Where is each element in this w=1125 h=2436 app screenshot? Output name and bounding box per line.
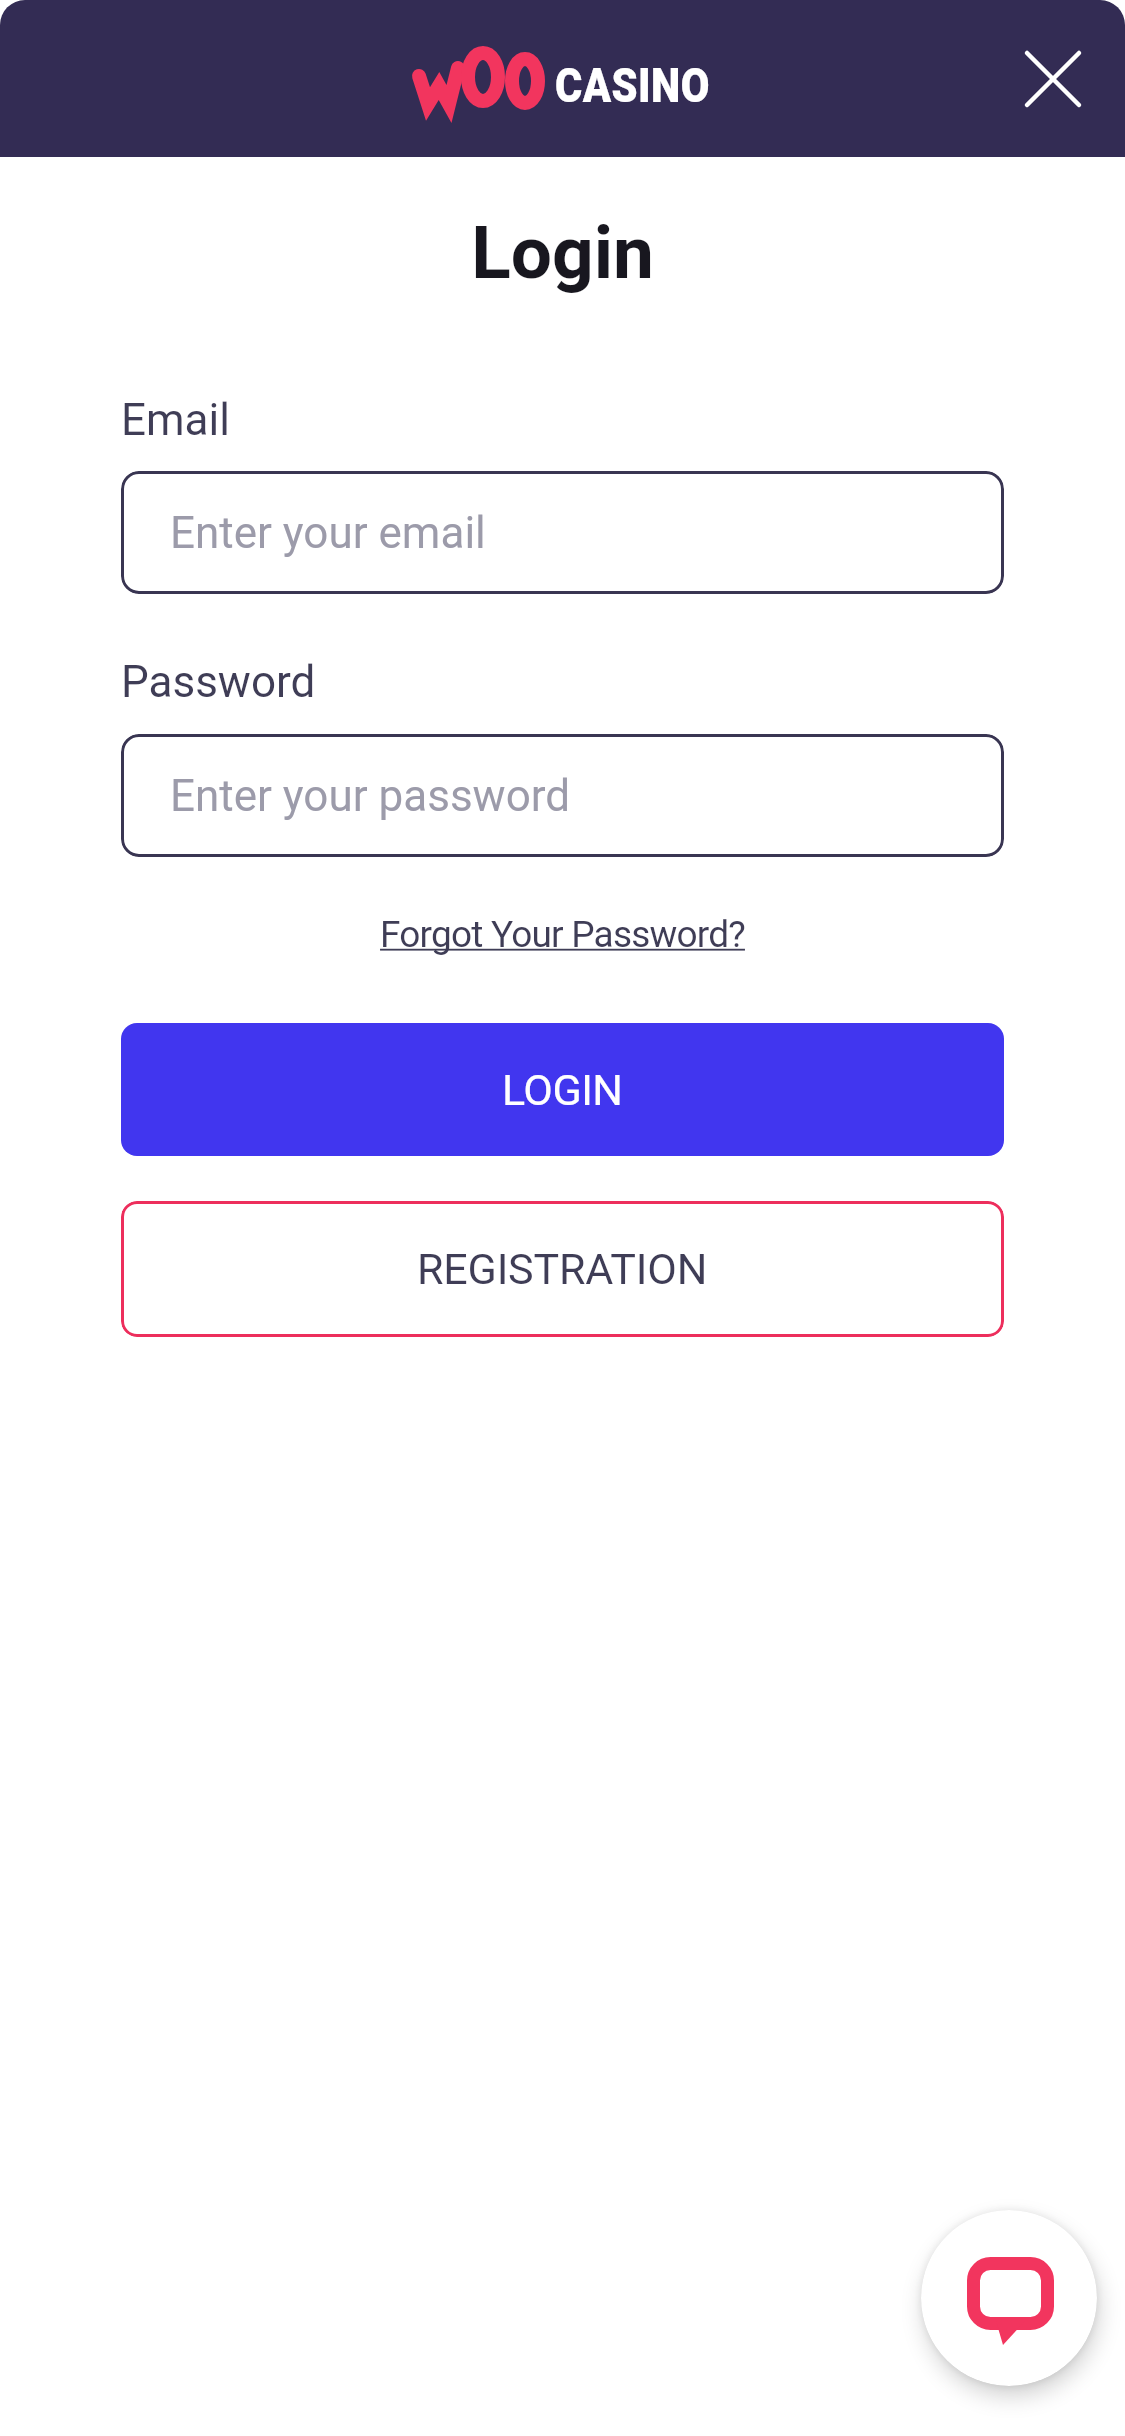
staticText: CASINO bbox=[555, 57, 710, 114]
staticText: Enter your password bbox=[170, 770, 571, 822]
button[interactable] bbox=[1014, 40, 1092, 118]
staticText: Enter your email bbox=[170, 507, 486, 559]
staticText: REGISTRATION bbox=[417, 1244, 708, 1294]
staticText: LOGIN bbox=[502, 1065, 623, 1115]
button[interactable]: Forgot Your Password? bbox=[121, 913, 1004, 956]
button[interactable]: REGISTRATION bbox=[121, 1201, 1004, 1337]
button[interactable]: Enter your email bbox=[121, 471, 1004, 594]
button[interactable] bbox=[921, 2210, 1097, 2386]
staticText: Login bbox=[0, 210, 1125, 296]
staticText: Email bbox=[121, 394, 230, 446]
button[interactable]: Enter your password bbox=[121, 734, 1004, 857]
button[interactable]: LOGIN bbox=[121, 1023, 1004, 1156]
staticText: Password bbox=[121, 656, 316, 708]
